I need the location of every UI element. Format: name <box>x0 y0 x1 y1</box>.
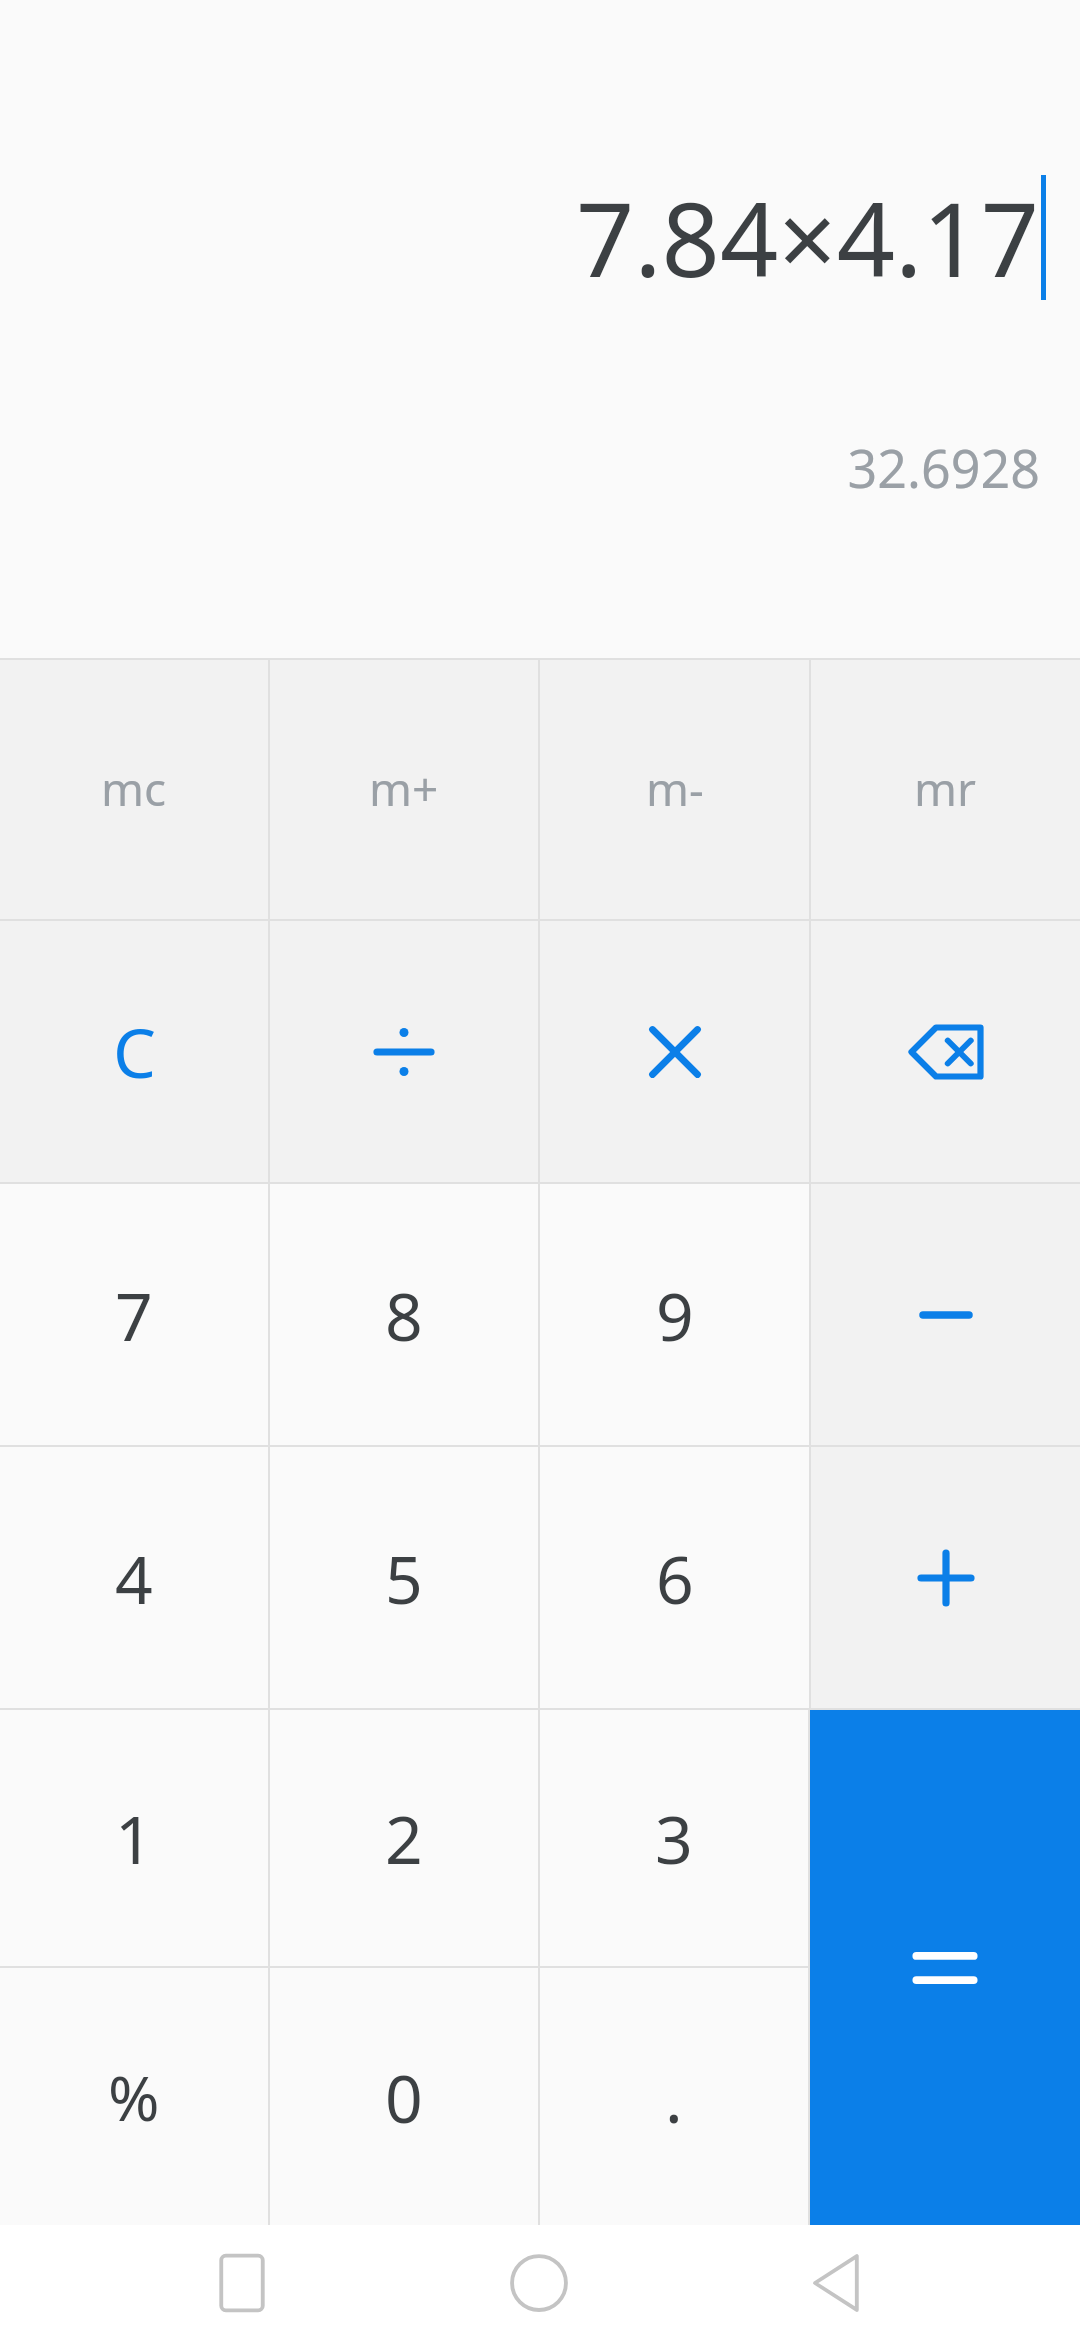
button[interactable]: % <box>0 1968 268 2225</box>
button[interactable]: Equals <box>810 1710 1080 2225</box>
button[interactable]: mc <box>0 658 268 919</box>
button[interactable]: 9 <box>540 1184 809 1445</box>
button[interactable]: 3 <box>540 1710 808 1966</box>
staticText: 7.84×4.17 <box>575 168 1039 307</box>
button[interactable]: Home <box>484 2228 594 2338</box>
staticText: m- <box>646 757 704 820</box>
button[interactable]: 8 <box>270 1184 538 1445</box>
button[interactable]: Minus <box>811 1184 1080 1445</box>
staticText: 8 <box>385 1270 423 1360</box>
button[interactable]: 7 <box>0 1184 268 1445</box>
staticText: C <box>113 1005 156 1098</box>
staticText: mc <box>101 757 167 820</box>
button[interactable]: . <box>540 1968 808 2225</box>
staticText: 5 <box>385 1533 423 1623</box>
staticText: % <box>108 2055 160 2139</box>
staticText: 9 <box>656 1270 694 1360</box>
staticText: 32.6928 <box>847 432 1040 503</box>
button[interactable]: Backspace <box>811 921 1080 1182</box>
button[interactable]: Divide <box>270 921 538 1182</box>
button[interactable]: 4 <box>0 1447 268 1708</box>
button[interactable]: 5 <box>270 1447 538 1708</box>
button[interactable]: Back <box>782 2228 892 2338</box>
staticText: 0 <box>385 2052 423 2142</box>
staticText: 2 <box>385 1793 423 1883</box>
staticText: 7 <box>115 1270 153 1360</box>
button[interactable]: Multiply <box>540 921 809 1182</box>
button[interactable]: Recents <box>187 2228 297 2338</box>
staticText: . <box>665 2052 683 2142</box>
staticText: mr <box>914 757 977 820</box>
button[interactable]: 2 <box>270 1710 538 1966</box>
staticText: 1 <box>115 1793 153 1883</box>
staticText: 4 <box>115 1533 153 1623</box>
staticText: 3 <box>655 1793 693 1883</box>
staticText: 6 <box>656 1533 694 1623</box>
button[interactable]: Plus <box>811 1447 1080 1708</box>
button[interactable]: 1 <box>0 1710 268 1966</box>
button[interactable]: mr <box>811 658 1080 919</box>
button[interactable]: 0 <box>270 1968 538 2225</box>
button[interactable]: m- <box>540 658 809 919</box>
button[interactable]: 6 <box>540 1447 809 1708</box>
staticText: m+ <box>369 757 439 820</box>
button[interactable]: C <box>0 921 268 1182</box>
button[interactable]: m+ <box>270 658 538 919</box>
